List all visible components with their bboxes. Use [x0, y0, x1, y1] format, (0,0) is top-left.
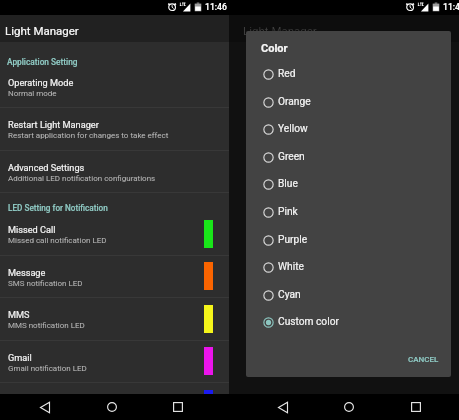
button[interactable]: Recent apps	[166, 395, 190, 419]
button[interactable]: Red	[246, 61, 451, 88]
staticText: Custom color	[278, 316, 339, 328]
staticText: Yellow	[278, 123, 308, 135]
staticText: Hangouts	[8, 394, 48, 405]
staticText: Operating Mode	[8, 77, 74, 88]
staticText: CANCEL	[408, 355, 439, 364]
button[interactable]: Purple	[246, 227, 451, 254]
button[interactable]	[0, 213, 229, 256]
staticText: Green	[278, 151, 305, 163]
button[interactable]: Orange	[246, 89, 451, 116]
staticText: 11:47	[443, 2, 459, 12]
staticText: Red	[278, 68, 296, 80]
button[interactable]	[0, 150, 229, 193]
staticText: Light Manager	[243, 24, 317, 37]
staticText: White	[278, 261, 304, 273]
button[interactable]: White	[246, 254, 451, 281]
staticText: Normal mode	[8, 89, 57, 98]
staticText: Hangouts notification LED	[8, 406, 101, 415]
staticText: Message	[8, 267, 46, 278]
button[interactable]: Pink	[246, 199, 451, 226]
staticText: Color	[261, 42, 288, 55]
staticText: Additional LED notification configuratio…	[8, 174, 156, 183]
button[interactable]: Custom color	[246, 309, 451, 336]
staticText: Application Setting	[7, 57, 78, 67]
button[interactable]: Green	[246, 144, 451, 171]
staticText: Missed call notification LED	[8, 236, 107, 245]
staticText: Purple	[278, 234, 308, 246]
staticText: Pink	[278, 206, 298, 218]
button[interactable]	[0, 298, 229, 341]
staticText: Orange	[278, 96, 311, 108]
staticText: Advanced Settings	[8, 162, 85, 173]
button[interactable]: Yellow	[246, 116, 451, 143]
staticText: Light Manager	[5, 24, 79, 37]
staticText: Blue	[278, 178, 298, 190]
staticText: MMS notification LED	[8, 321, 85, 330]
staticText: Restart Light Manager	[8, 119, 99, 130]
staticText: Missed Call	[8, 224, 56, 235]
staticText: Restart application for changes to take …	[8, 131, 169, 140]
staticText: Gmail notification LED	[8, 364, 87, 373]
button[interactable]	[0, 255, 229, 298]
staticText: LED Setting for Notification	[8, 203, 108, 213]
staticText: SMS notification LED	[8, 279, 83, 288]
button[interactable]: Home	[337, 395, 361, 419]
button[interactable]: Cyan	[246, 282, 451, 309]
button[interactable]: Blue	[246, 171, 451, 198]
button[interactable]	[0, 340, 229, 383]
button[interactable]: Recent apps	[404, 395, 428, 419]
button[interactable]: Back	[33, 395, 57, 419]
staticText: 11:46	[205, 2, 227, 12]
button[interactable]	[0, 108, 229, 151]
button[interactable]: Back	[271, 395, 295, 419]
staticText: MMS	[8, 309, 30, 320]
staticText: Cyan	[278, 289, 301, 301]
button[interactable]: Home	[100, 395, 124, 419]
button[interactable]	[0, 65, 229, 108]
button[interactable]	[0, 383, 229, 420]
staticText: Gmail	[8, 352, 32, 363]
